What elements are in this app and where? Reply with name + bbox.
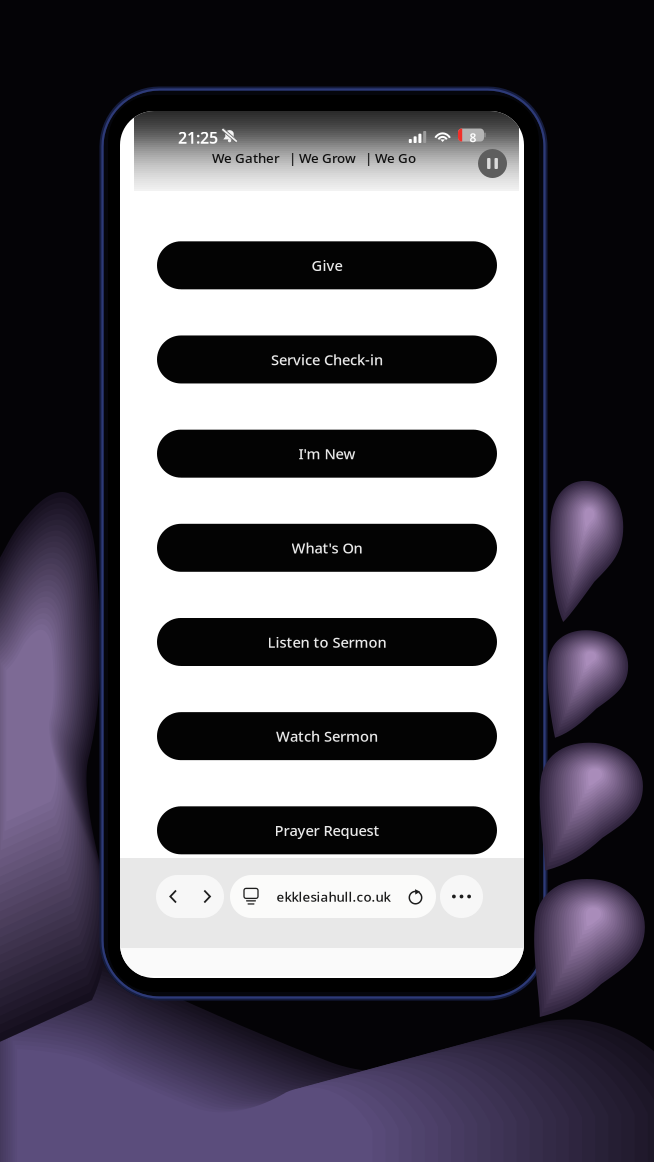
staticText: Service Check-in <box>271 350 383 369</box>
button[interactable]: Pause <box>478 149 507 178</box>
button[interactable]: Listen to Sermon <box>157 618 497 666</box>
staticText: 21:25 <box>178 127 218 148</box>
button[interactable]: Service Check-in <box>157 335 497 383</box>
button[interactable]: Watch Sermon <box>157 712 497 760</box>
staticText: Watch Sermon <box>276 726 378 746</box>
button[interactable]: More <box>440 875 483 918</box>
button[interactable]: Give <box>157 241 497 289</box>
staticText: 8 <box>469 129 476 145</box>
button[interactable]: ekklesiahull.co.uk <box>230 875 436 918</box>
staticText: We Gather | We Grow | We Go <box>212 149 416 167</box>
staticText: Prayer Request <box>274 821 379 840</box>
staticText: Listen to Sermon <box>267 632 386 652</box>
button[interactable]: What's On <box>157 524 497 572</box>
button[interactable]: Prayer Request <box>157 806 497 854</box>
staticText: ekklesiahull.co.uk <box>276 888 390 905</box>
staticText: Give <box>311 256 342 275</box>
staticText: What's On <box>291 538 362 558</box>
button[interactable]: Back and forward <box>156 875 224 918</box>
staticText: I'm New <box>298 444 355 463</box>
button[interactable]: I'm New <box>157 430 497 478</box>
